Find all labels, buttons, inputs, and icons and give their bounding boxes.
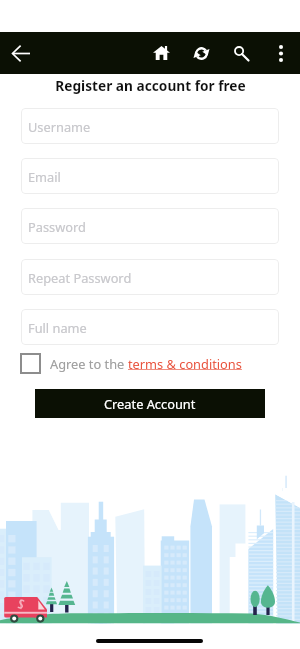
button[interactable]: Agree to terms checkbox xyxy=(20,353,41,374)
button[interactable]: Password xyxy=(21,208,279,244)
staticText: Full name xyxy=(28,319,87,336)
staticText: Agree to the xyxy=(50,355,128,372)
staticText: Register an account for free xyxy=(55,76,246,95)
button[interactable]: Search xyxy=(226,32,256,74)
button[interactable]: terms & conditions xyxy=(128,355,242,372)
button[interactable]: Home xyxy=(146,32,176,74)
staticText: Password xyxy=(28,218,86,235)
staticText: Repeat Password xyxy=(28,269,132,286)
button[interactable]: Create Account xyxy=(35,389,265,418)
staticText: Username xyxy=(28,118,91,135)
staticText: Email xyxy=(28,168,61,185)
button[interactable]: Email xyxy=(21,158,279,194)
button[interactable]: Refresh xyxy=(186,32,216,74)
button[interactable]: Back xyxy=(0,32,42,74)
button[interactable]: Repeat Password xyxy=(21,259,279,295)
button[interactable]: Username xyxy=(21,108,279,144)
button[interactable]: More options xyxy=(266,32,296,74)
button[interactable]: Full name xyxy=(21,309,279,345)
staticText: Create Account xyxy=(104,395,196,412)
